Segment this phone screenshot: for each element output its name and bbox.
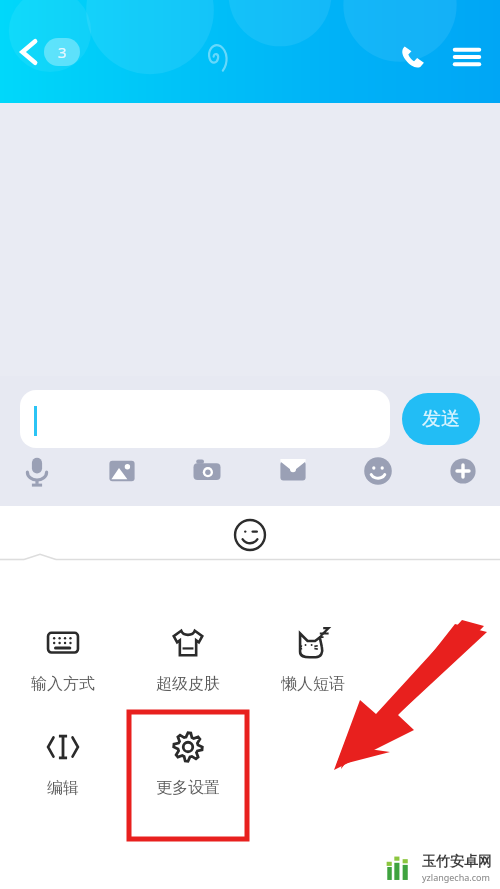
button[interactable]: Emoji (355, 448, 401, 494)
button[interactable]: 超级皮肤 (125, 622, 250, 698)
button[interactable]: 发送 (402, 393, 480, 445)
button[interactable] (20, 390, 390, 448)
button[interactable]: Listen (199, 36, 237, 80)
staticText: yzlangecha.com (422, 871, 490, 883)
staticText: 发送 (422, 407, 460, 431)
button[interactable]: Call (392, 36, 434, 78)
button[interactable]: Camera (184, 448, 230, 494)
staticText: 玉竹安卓网 (422, 853, 492, 871)
button[interactable]: Baidu keyboard (0, 506, 166, 564)
button[interactable]: Back, 3 unread (10, 31, 88, 73)
staticText: 懒人短语 (281, 674, 345, 694)
button[interactable]: 编辑 (0, 726, 125, 802)
staticText: 编辑 (47, 778, 79, 798)
button[interactable]: 输入方式 (0, 622, 125, 698)
button[interactable]: Voice input (14, 448, 60, 494)
button[interactable]: Collapse keyboard (333, 506, 500, 564)
button[interactable]: 更多设置 (129, 712, 247, 839)
staticText: 3 (58, 42, 67, 62)
button[interactable]: Send file (270, 448, 316, 494)
button[interactable]: 懒人短语 (250, 622, 375, 698)
staticText: 输入方式 (31, 674, 95, 694)
button[interactable]: Emoji (166, 506, 333, 564)
button[interactable]: Menu (446, 36, 488, 78)
button[interactable]: Gallery (99, 448, 145, 494)
button[interactable]: More (440, 448, 486, 494)
staticText: 更多设置 (156, 778, 220, 798)
staticText: 超级皮肤 (156, 674, 220, 694)
